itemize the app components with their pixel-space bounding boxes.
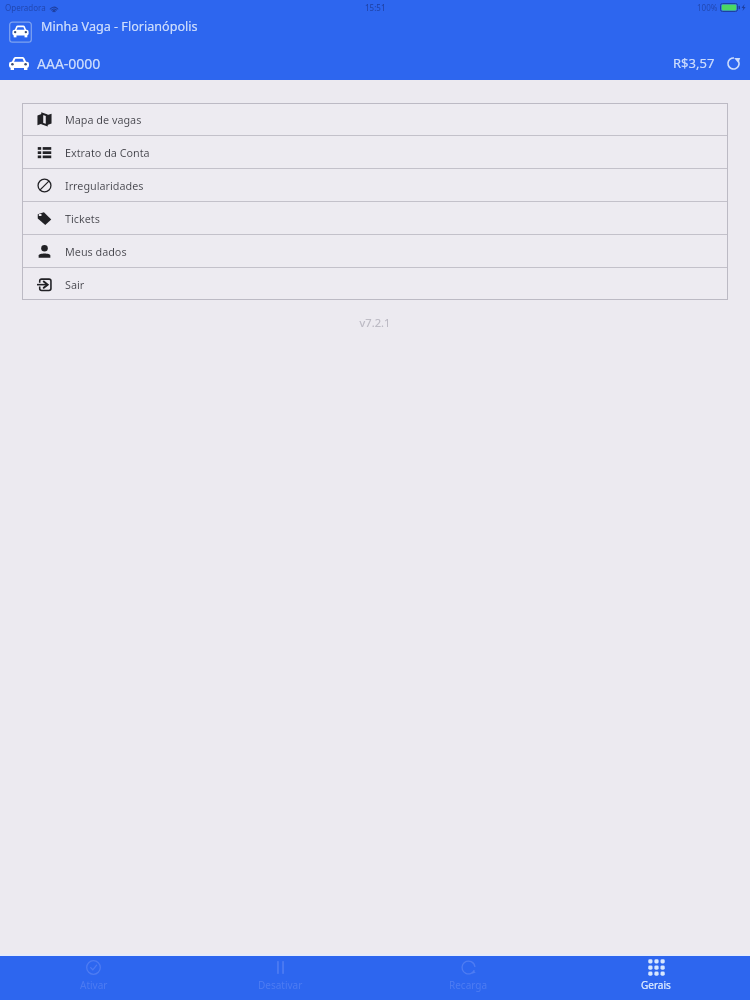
staticText: Desativar (258, 978, 303, 992)
staticText: Meus dados (65, 244, 127, 259)
button[interactable]: Mapa de vagas (22, 103, 728, 135)
button[interactable]: Desativar (187, 956, 374, 1000)
button[interactable]: Meus dados (22, 235, 728, 267)
staticText: Minha Vaga - Florianópolis (41, 18, 198, 35)
button[interactable]: Extrato da Conta (22, 136, 728, 168)
staticText: 100% (697, 2, 718, 13)
button[interactable]: Minha vaga (7, 16, 34, 44)
staticText: Recarga (449, 978, 488, 992)
button[interactable]: Ativar (0, 956, 187, 1000)
button[interactable]: Gerais (562, 956, 750, 1000)
staticText: Ativar (80, 978, 108, 992)
button[interactable]: Sair (22, 268, 728, 300)
staticText: Gerais (641, 978, 671, 992)
staticText: Mapa de vagas (65, 112, 142, 127)
button[interactable]: Recarga (374, 956, 562, 1000)
staticText: Sair (65, 277, 85, 292)
staticText: Operadora (5, 2, 46, 13)
staticText: AAA-0000 (37, 54, 101, 73)
staticText: 15:51 (365, 2, 386, 13)
staticText: Tickets (65, 211, 100, 226)
staticText: v7.2.1 (0, 315, 750, 330)
staticText: R$3,57 (673, 54, 715, 72)
button[interactable]: Tickets (22, 202, 728, 234)
staticText: Irregularidades (65, 178, 144, 193)
button[interactable]: Atualizar saldo (726, 56, 741, 71)
button[interactable]: Irregularidades (22, 169, 728, 201)
staticText: Extrato da Conta (65, 145, 150, 160)
